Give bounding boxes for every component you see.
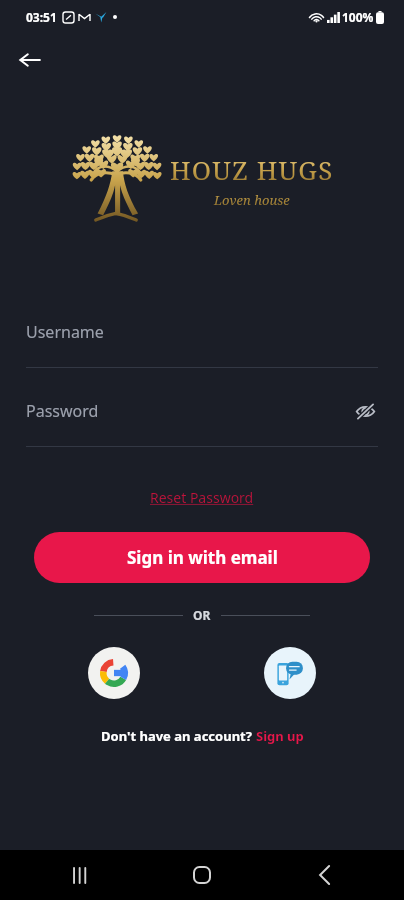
button[interactable]: Back xyxy=(10,40,50,80)
button[interactable]: Sign in with Google xyxy=(88,647,140,699)
button[interactable]: Sign in with phone SMS xyxy=(264,647,316,699)
button[interactable]: Back xyxy=(302,853,346,897)
staticText: Loven house xyxy=(214,191,290,209)
button[interactable]: Password xyxy=(0,389,404,433)
staticText: 100% xyxy=(342,9,374,25)
staticText: Don't have an account? xyxy=(101,727,256,745)
staticText: HOUZ HUGS xyxy=(170,152,334,187)
button[interactable]: Home xyxy=(180,853,224,897)
button[interactable]: Sign in with email xyxy=(34,532,370,583)
staticText: Password xyxy=(26,400,99,422)
staticText: OR xyxy=(193,607,211,623)
button[interactable]: Recent apps xyxy=(58,853,102,897)
button[interactable]: Sign up xyxy=(256,727,304,745)
other: Show password xyxy=(352,398,378,424)
button[interactable]: Username xyxy=(0,310,404,354)
staticText: 03:51 xyxy=(26,9,57,25)
button[interactable]: Reset Password xyxy=(144,485,260,510)
staticText: Sign in with email xyxy=(127,546,278,569)
staticText: Username xyxy=(26,321,104,343)
